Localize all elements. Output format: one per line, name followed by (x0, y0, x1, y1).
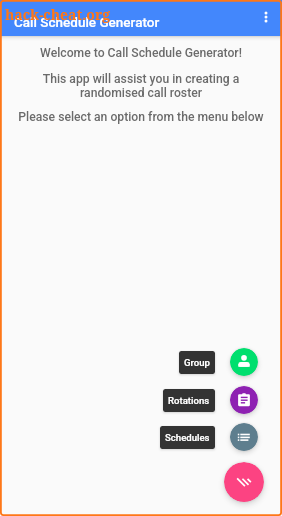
staticText: Rotations (168, 395, 210, 406)
button[interactable]: Close menu (224, 462, 264, 502)
button[interactable]: Schedules (230, 423, 258, 451)
staticText: Please select an option from the menu be… (0, 110, 282, 124)
staticText: Welcome to Call Schedule Generator! (0, 46, 282, 60)
button[interactable]: Rotations (163, 389, 215, 412)
staticText: hack-cheat.org (5, 5, 111, 24)
button[interactable]: Group (179, 351, 215, 374)
button[interactable]: Schedules (160, 426, 215, 449)
staticText: Group (184, 357, 210, 368)
button[interactable]: Group (230, 348, 258, 376)
staticText: Schedules (165, 432, 210, 443)
staticText: Call Schedule Generator (14, 14, 160, 30)
staticText: This app will assist you in creating a r… (40, 72, 242, 100)
button[interactable]: Rotations (230, 386, 258, 414)
button[interactable]: More options (255, 6, 277, 28)
